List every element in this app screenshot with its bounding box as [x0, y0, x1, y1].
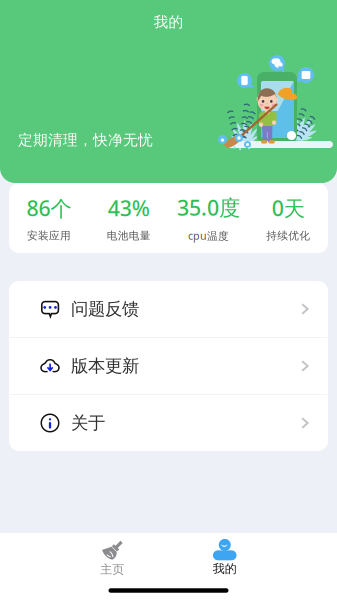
- staticText: 版本更新: [71, 355, 139, 377]
- staticText: 我的: [213, 561, 237, 576]
- staticText: 问题反馈: [71, 298, 139, 320]
- staticText: 电池电量: [107, 229, 151, 242]
- staticText: 安装应用: [27, 229, 71, 242]
- staticText: 持续优化: [266, 229, 310, 242]
- staticText: 我的: [153, 13, 183, 31]
- staticText: 定期清理，快净无忧: [18, 131, 153, 149]
- staticText: 0天: [272, 194, 305, 222]
- button[interactable]: 主页: [56, 532, 168, 586]
- staticText: 关于: [71, 412, 105, 434]
- button[interactable]: 我的: [168, 533, 281, 585]
- staticText: cpu温度: [188, 229, 229, 243]
- staticText: 35.0度: [177, 193, 240, 221]
- staticText: 43%: [108, 194, 150, 222]
- button[interactable]: 版本更新: [9, 338, 328, 394]
- button[interactable]: 关于: [9, 395, 328, 451]
- staticText: 主页: [100, 562, 124, 577]
- staticText: 86个: [26, 194, 71, 222]
- button[interactable]: 问题反馈: [9, 281, 328, 337]
